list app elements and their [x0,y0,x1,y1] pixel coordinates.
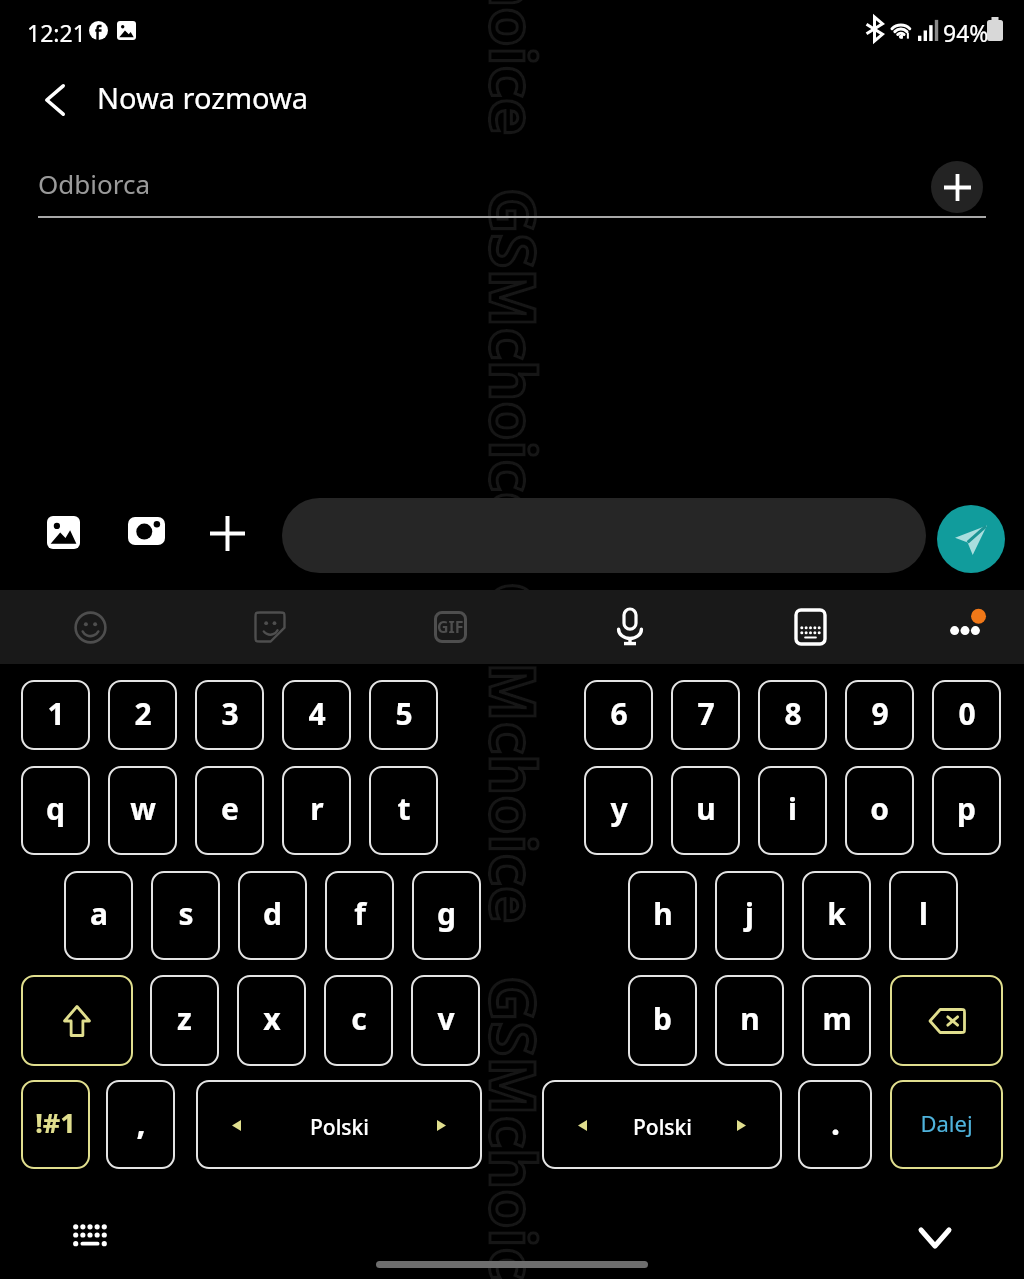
button[interactable]: 2 [108,680,177,750]
button[interactable]: r [282,766,351,855]
button[interactable]: a [64,871,133,960]
button[interactable]: More attachments [195,501,259,565]
staticText: r [310,788,324,829]
button[interactable]: m [802,975,871,1066]
button[interactable]: c [324,975,393,1066]
staticText: x [263,998,281,1039]
button[interactable]: j [715,871,784,960]
button[interactable]: 3 [195,680,264,750]
staticText: y [610,788,628,829]
staticText: Polski [310,1113,369,1142]
button[interactable]: . [798,1080,872,1169]
button[interactable] [890,975,1003,1066]
button[interactable]: n [715,975,784,1066]
button[interactable]: k [802,871,871,960]
staticText: Dalej [920,1108,973,1138]
staticText: a [90,893,108,934]
button[interactable]: b [628,975,697,1066]
staticText: v [437,998,455,1039]
button[interactable]: Back [25,70,85,130]
button[interactable]: 4 [282,680,351,750]
staticText: Nowa rozmowa [97,78,309,117]
staticText: 1 [47,693,65,734]
staticText: Polski [633,1113,692,1142]
staticText: 12:21 [27,17,86,48]
staticText: u [696,788,716,829]
staticText: . [831,1101,840,1145]
staticText: 9 [871,693,889,734]
button[interactable]: More [935,597,995,657]
button[interactable]: Gallery [31,500,95,564]
button[interactable]: 7 [671,680,740,750]
staticText: e [221,788,239,829]
staticText: 8 [784,693,802,734]
staticText: 2 [134,693,152,734]
staticText: GSMchoice [471,0,557,136]
button[interactable]: 0 [932,680,1001,750]
button[interactable]: 9 [845,680,914,750]
staticText: !#1 [35,1104,76,1141]
staticText: b [653,998,672,1039]
button[interactable]: h [628,871,697,960]
button[interactable]: x [237,975,306,1066]
button[interactable]: g [412,871,481,960]
button[interactable]: Hide keyboard [60,1205,120,1265]
button[interactable]: 5 [369,680,438,750]
staticText: 7 [697,693,715,734]
button[interactable]: i [758,766,827,855]
button[interactable]: Add recipient [931,161,983,213]
button[interactable]: GIF [420,597,480,657]
button[interactable]: e [195,766,264,855]
staticText: f [354,893,366,934]
button[interactable]: Polski [542,1080,782,1169]
button[interactable]: Camera [114,499,178,563]
staticText: s [178,893,194,934]
button[interactable]: w [108,766,177,855]
staticText: 3 [221,693,239,734]
button[interactable]: f [325,871,394,960]
button[interactable]: , [106,1080,175,1169]
button[interactable]: 1 [21,680,90,750]
staticText: Odbiorca [38,166,151,201]
button[interactable]: l [889,871,958,960]
staticText: 4 [308,693,326,734]
button[interactable]: Voice input [600,597,660,657]
button[interactable] [21,975,133,1066]
staticText: GSMchoice [471,188,557,530]
staticText: h [653,893,673,934]
button[interactable]: o [845,766,914,855]
button[interactable]: z [150,975,219,1066]
staticText: 0 [958,693,976,734]
staticText: n [740,998,760,1039]
staticText: 6 [610,693,628,734]
staticText: l [919,893,928,934]
button[interactable]: Emoji [60,597,120,657]
button[interactable]: u [671,766,740,855]
staticText: 5 [395,693,413,734]
staticText: GSMchoice [471,976,557,1279]
staticText: p [957,788,976,829]
staticText: j [745,893,754,934]
button[interactable]: t [369,766,438,855]
button[interactable]: Send [937,505,1005,573]
staticText: t [397,788,411,829]
button[interactable]: y [584,766,653,855]
button[interactable]: d [238,871,307,960]
button[interactable]: Dalej [890,1080,1003,1169]
button[interactable]: s [151,871,220,960]
button[interactable]: v [411,975,480,1066]
button[interactable]: q [21,766,90,855]
button[interactable]: 6 [584,680,653,750]
staticText: c [351,998,367,1039]
button[interactable]: 8 [758,680,827,750]
staticText: q [46,788,65,829]
button[interactable]: Collapse keyboard [905,1208,965,1268]
button[interactable] [282,498,926,573]
button[interactable]: Polski [196,1080,482,1169]
button[interactable]: p [932,766,1001,855]
staticText: d [263,893,282,934]
staticText: GIF [437,616,464,638]
button[interactable]: Stickers [240,597,300,657]
button[interactable]: !#1 [21,1080,90,1169]
button[interactable]: Keyboard settings [780,597,840,657]
